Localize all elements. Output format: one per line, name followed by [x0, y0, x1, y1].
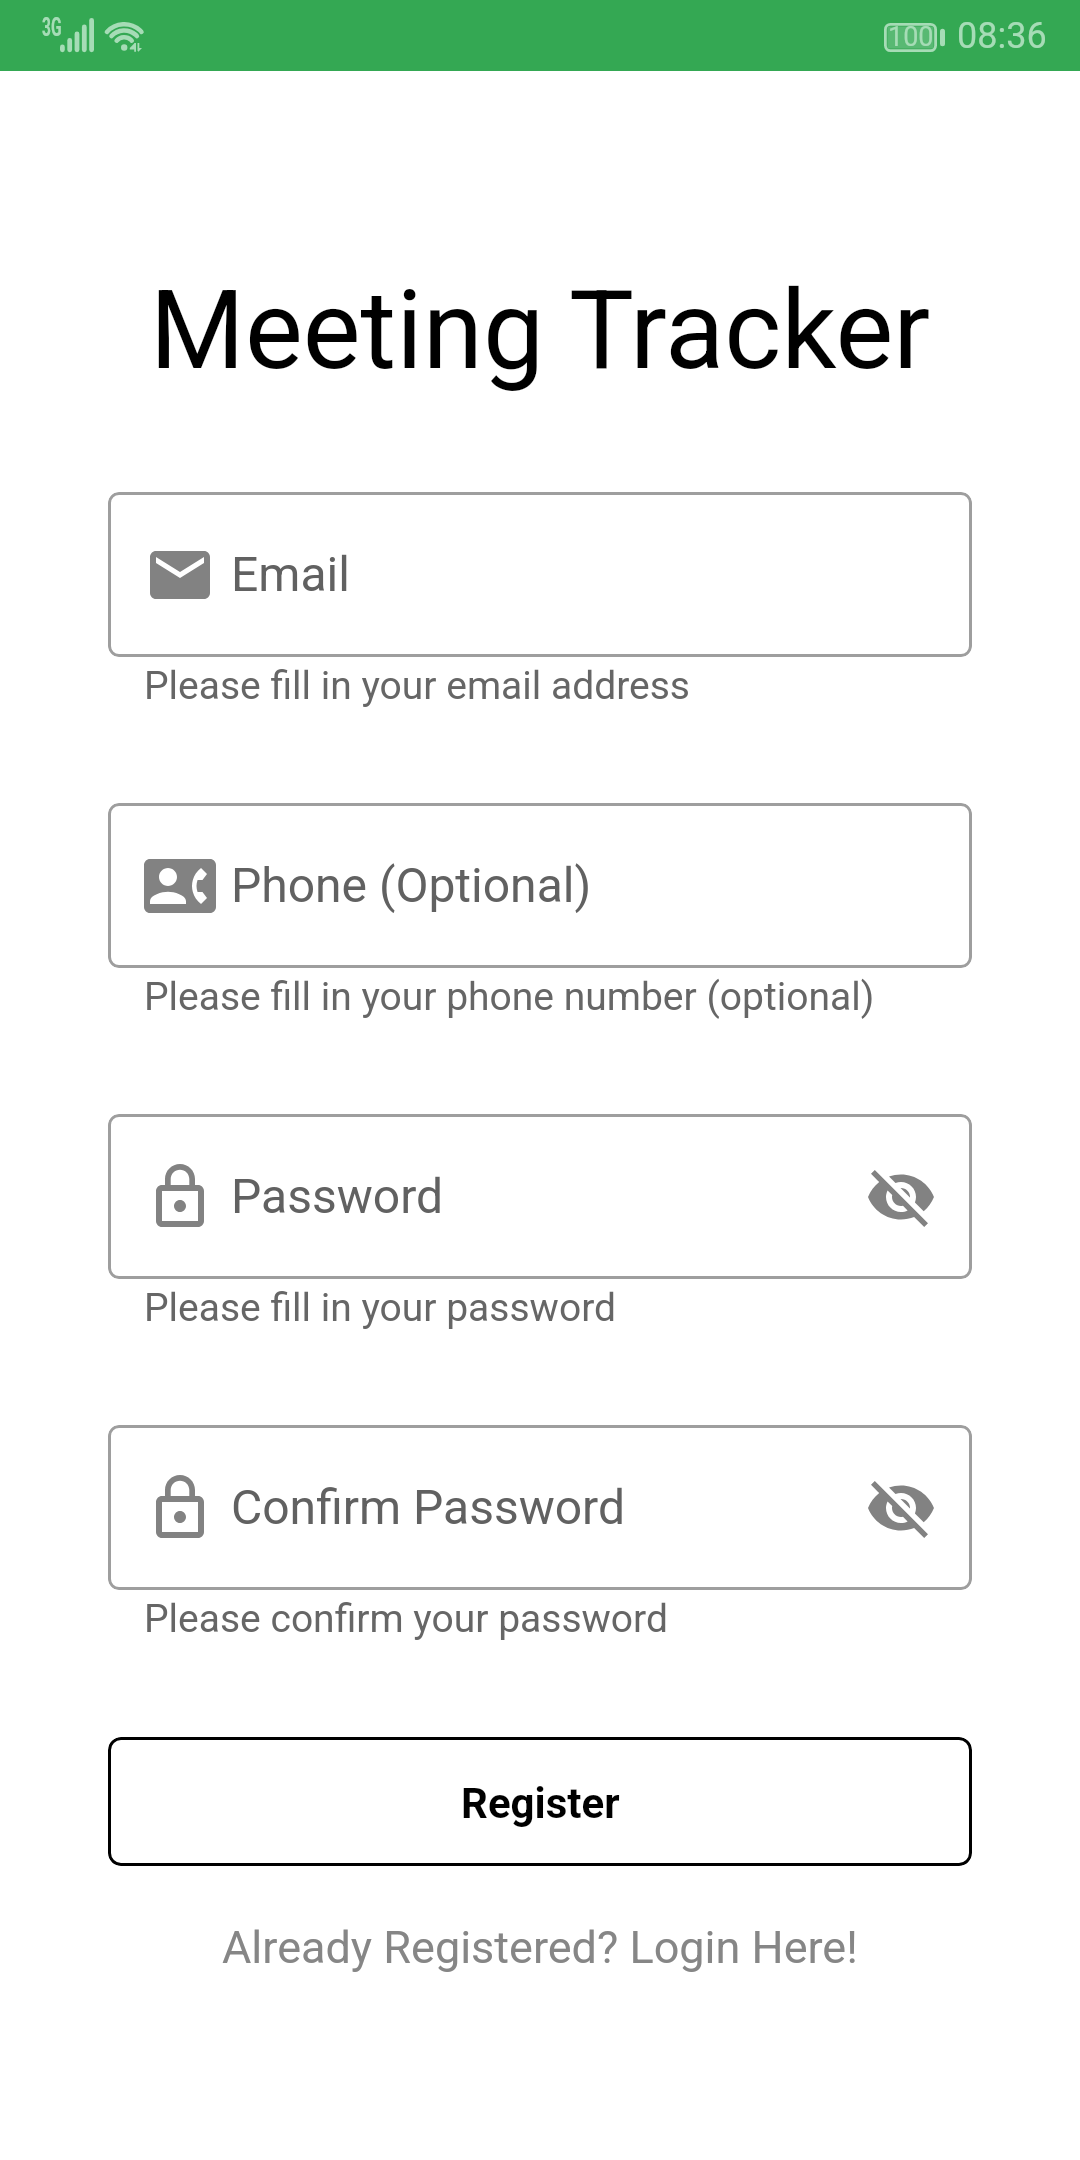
- staticText: 08:36: [957, 15, 1047, 57]
- button[interactable]: Password: [108, 1114, 972, 1279]
- button[interactable]: Email: [108, 492, 972, 657]
- staticText: Already Registered? Login Here!: [222, 1921, 858, 1974]
- staticText: Please fill in your phone number (option…: [144, 974, 875, 1020]
- staticText: Confirm Password: [231, 1479, 626, 1535]
- staticText: Password: [231, 1168, 444, 1224]
- button[interactable]: Show password: [851, 1458, 951, 1558]
- button[interactable]: Confirm Password: [108, 1425, 972, 1590]
- button[interactable]: Register: [108, 1737, 972, 1866]
- staticText: Please fill in your password: [144, 1285, 616, 1331]
- button[interactable]: Phone (Optional): [108, 803, 972, 968]
- button[interactable]: Show password: [851, 1147, 951, 1247]
- staticText: Meeting Tracker: [0, 267, 1080, 395]
- staticText: Phone (Optional): [231, 857, 592, 913]
- staticText: 3G: [42, 13, 62, 43]
- staticText: Register: [461, 1779, 620, 1828]
- staticText: Please fill in your email address: [144, 663, 690, 709]
- button[interactable]: Already Registered? Login Here!: [0, 1900, 1080, 1994]
- staticText: Please confirm your password: [144, 1596, 668, 1642]
- staticText: 100: [888, 21, 934, 53]
- staticText: Email: [231, 546, 350, 602]
